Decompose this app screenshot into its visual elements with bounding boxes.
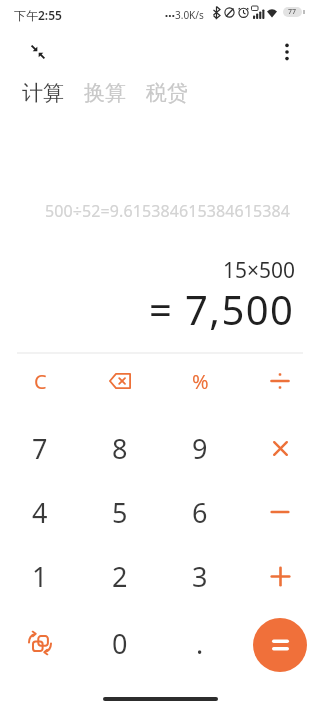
staticText: 下午2:55 [14,7,62,23]
staticText: . [196,625,204,662]
button[interactable] [30,44,46,60]
staticText: 3 [192,558,208,595]
staticText: % [192,368,209,395]
staticText: 换算 [84,80,126,106]
button[interactable]: 3 [164,548,236,604]
button[interactable] [244,484,316,540]
staticText: 15×500 [223,256,296,285]
button[interactable]: 1 [4,548,76,604]
staticText: 3.0K/s [175,8,204,22]
button[interactable] [244,353,316,409]
staticText: 7 [32,430,48,467]
staticText: 4 [32,494,48,531]
staticText: 1 [32,558,48,595]
button[interactable] [253,618,307,672]
staticText: 9 [192,430,208,467]
button[interactable]: 4 [4,484,76,540]
staticText: 77 [288,7,297,17]
button[interactable]: C [4,353,76,409]
button[interactable] [281,43,293,61]
button[interactable]: 税贷 [146,80,188,106]
button[interactable]: 7 [4,420,76,476]
staticText: 2 [112,558,128,595]
button[interactable] [4,615,76,671]
button[interactable]: 换算 [84,80,126,106]
button[interactable]: 0 [84,615,156,671]
staticText: 税贷 [146,80,188,106]
staticText: 5 [112,494,128,531]
staticText: 500÷52=9.615384615384615384 [45,200,290,222]
button[interactable]: 9 [164,420,236,476]
button[interactable]: 6 [164,484,236,540]
button[interactable] [244,420,316,476]
button[interactable] [84,353,156,409]
staticText: 0 [112,625,128,662]
staticText: 计算 [22,80,64,106]
button[interactable]: % [164,353,236,409]
button[interactable]: . [164,615,236,671]
button[interactable]: 2 [84,548,156,604]
staticText: = 7,500 [149,282,295,336]
button[interactable]: 计算 [22,80,64,106]
staticText: 8 [112,430,128,467]
staticText: C [34,368,47,395]
button[interactable]: 8 [84,420,156,476]
button[interactable]: 5 [84,484,156,540]
button[interactable] [244,548,316,604]
staticText: 6 [192,494,208,531]
